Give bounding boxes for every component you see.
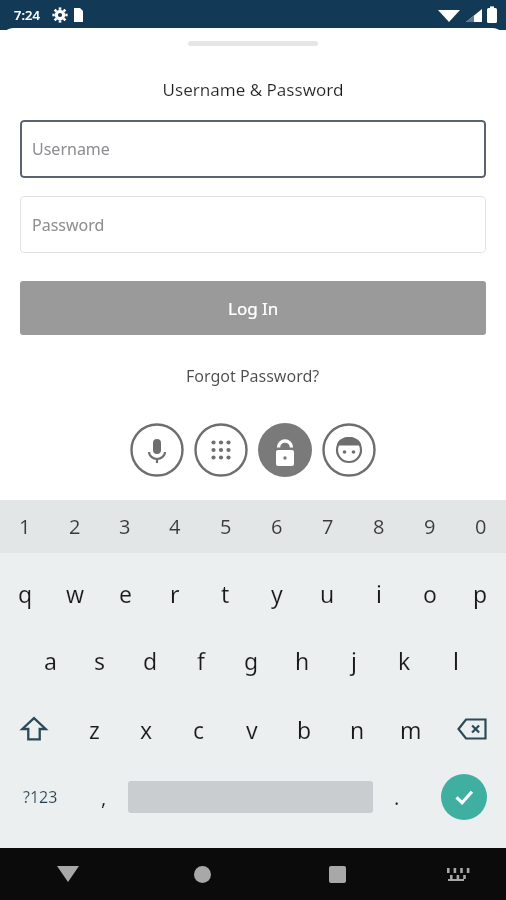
button[interactable]: 2 (50, 500, 100, 553)
staticText: , (101, 784, 107, 811)
button[interactable]: 6 (251, 500, 302, 553)
staticText: v (246, 714, 258, 745)
button[interactable]: Password (20, 196, 486, 253)
button[interactable]: Hide keyboard (0, 848, 135, 900)
button[interactable]: 5 (200, 500, 251, 553)
button[interactable]: Log In (20, 281, 486, 335)
staticText: 3 (119, 513, 131, 540)
staticText: q (18, 578, 33, 609)
button[interactable]: p (455, 561, 506, 625)
staticText: Forgot Password? (186, 365, 320, 387)
staticText: Username (32, 138, 110, 160)
staticText: Log In (228, 297, 279, 320)
button[interactable]: Shift (0, 695, 68, 763)
button[interactable]: . (373, 763, 421, 831)
button[interactable]: r (150, 561, 200, 625)
button[interactable]: c (172, 695, 225, 763)
staticText: 1 (19, 513, 31, 540)
button[interactable]: l (430, 625, 481, 695)
staticText: x (140, 714, 153, 745)
button[interactable]: m (384, 695, 437, 763)
button[interactable]: 3 (100, 500, 150, 553)
button[interactable]: s (75, 625, 125, 695)
button[interactable]: 8 (353, 500, 404, 553)
staticText: 4 (169, 513, 181, 540)
staticText: l (453, 645, 459, 676)
staticText: . (394, 784, 400, 811)
staticText: r (170, 578, 180, 609)
staticText: e (119, 578, 132, 609)
button[interactable]: 7 (302, 500, 353, 553)
button[interactable]: Voice unlock (130, 423, 184, 477)
button[interactable]: f (175, 625, 226, 695)
button[interactable]: o (404, 561, 455, 625)
staticText: 8 (373, 513, 385, 540)
button[interactable]: Password unlock (258, 423, 312, 477)
staticText: 5 (220, 513, 232, 540)
button[interactable]: g (226, 625, 277, 695)
button[interactable]: w (50, 561, 100, 625)
button[interactable]: x (120, 695, 172, 763)
button[interactable]: u (302, 561, 353, 625)
staticText: c (193, 714, 205, 745)
staticText: j (351, 645, 357, 676)
staticText: 6 (271, 513, 283, 540)
button[interactable]: 0 (455, 500, 506, 553)
button[interactable]: b (278, 695, 331, 763)
staticText: o (423, 578, 437, 609)
button[interactable]: Switch keyboard (405, 848, 506, 900)
button[interactable]: v (225, 695, 278, 763)
staticText: y (271, 578, 283, 609)
staticText: Username & Password (0, 78, 506, 101)
button[interactable]: k (379, 625, 430, 695)
staticText: n (350, 714, 365, 745)
button[interactable]: a (25, 625, 75, 695)
button[interactable]: t (200, 561, 251, 625)
button[interactable]: q (0, 561, 50, 625)
button[interactable]: Face unlock (322, 423, 376, 477)
staticText: t (221, 578, 230, 609)
button[interactable]: z (68, 695, 120, 763)
button[interactable]: PIN keypad (194, 423, 248, 477)
staticText: m (400, 714, 422, 745)
staticText: s (94, 645, 106, 676)
button[interactable]: Home (135, 848, 270, 900)
staticText: 7:24 (14, 6, 40, 24)
button[interactable]: ?123 (0, 763, 80, 831)
staticText: Password (32, 214, 105, 236)
button[interactable]: e (100, 561, 150, 625)
button[interactable]: Recent apps (270, 848, 405, 900)
staticText: p (473, 578, 488, 609)
staticText: a (44, 645, 57, 676)
staticText: g (244, 645, 259, 676)
staticText: d (143, 645, 158, 676)
button[interactable]: Username (20, 120, 486, 178)
staticText: f (197, 645, 205, 676)
button[interactable]: n (331, 695, 384, 763)
staticText: z (89, 714, 100, 745)
staticText: ?123 (23, 786, 58, 808)
button[interactable]: 4 (150, 500, 200, 553)
staticText: h (295, 645, 310, 676)
button[interactable]: j (328, 625, 379, 695)
staticText: 2 (69, 513, 81, 540)
staticText: b (297, 714, 312, 745)
staticText: i (376, 578, 382, 609)
button[interactable]: Forgot Password? (180, 359, 326, 393)
button[interactable]: Backspace (437, 695, 506, 763)
staticText: w (66, 578, 85, 609)
button[interactable]: i (353, 561, 404, 625)
button[interactable]: d (125, 625, 175, 695)
button[interactable]: h (277, 625, 328, 695)
staticText: 7 (322, 513, 334, 540)
staticText: u (320, 578, 335, 609)
staticText: 0 (475, 513, 487, 540)
button[interactable]: y (251, 561, 302, 625)
button[interactable]: Done (421, 763, 506, 831)
button[interactable]: 1 (0, 500, 50, 553)
button[interactable]: , (80, 763, 128, 831)
button[interactable]: 9 (404, 500, 455, 553)
staticText: 9 (424, 513, 436, 540)
